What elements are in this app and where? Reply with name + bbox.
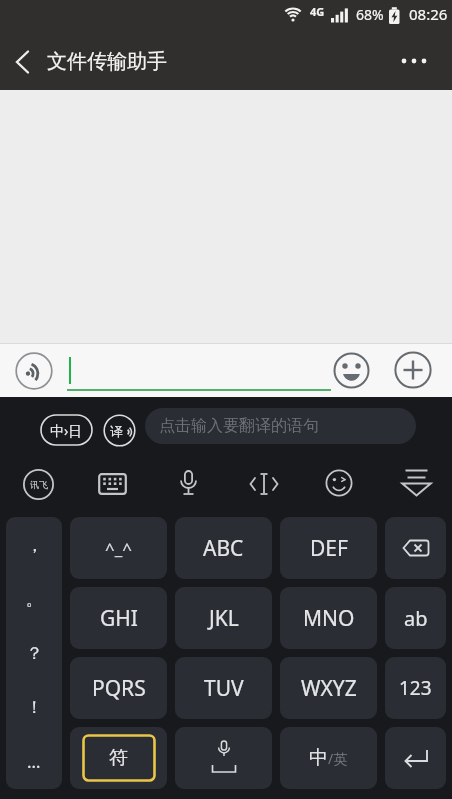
button[interactable]	[401, 468, 432, 498]
button[interactable]: JKL	[175, 587, 272, 649]
button[interactable]: TUV	[175, 657, 272, 719]
button[interactable]	[14, 50, 32, 74]
button[interactable]	[177, 470, 200, 498]
button[interactable]: ab	[385, 587, 446, 649]
staticText: JKL	[209, 604, 239, 633]
button[interactable]: 符	[70, 727, 167, 789]
button[interactable]	[325, 469, 353, 497]
button[interactable]: WXYZ	[280, 657, 377, 719]
button[interactable]	[398, 52, 432, 70]
staticText: ，	[26, 535, 43, 556]
staticText: 符	[109, 746, 128, 770]
staticText: GHI	[100, 604, 138, 633]
button[interactable]	[394, 351, 432, 389]
staticText: ！	[26, 697, 43, 718]
button[interactable]	[175, 727, 272, 789]
button[interactable]: ABC	[175, 517, 272, 579]
button[interactable]	[385, 727, 446, 789]
button[interactable]	[103, 414, 136, 447]
button[interactable]: 中›日	[40, 414, 93, 446]
button[interactable]	[22, 468, 55, 501]
button[interactable]: 点击输入要翻译的语句	[145, 408, 416, 444]
staticText: 讯飞	[30, 479, 48, 490]
staticText: ABC	[203, 534, 244, 563]
button[interactable]	[6, 517, 62, 789]
staticText: 08:26	[409, 4, 448, 24]
staticText: 。	[26, 589, 43, 610]
button[interactable]: PQRS	[70, 657, 167, 719]
staticText: TUV	[204, 674, 244, 703]
staticText: 123	[399, 675, 432, 701]
staticText: 中›日	[50, 421, 83, 440]
button[interactable]: 123	[385, 657, 446, 719]
button[interactable]: 中/英	[280, 727, 377, 789]
staticText: 中/英	[309, 746, 348, 770]
staticText: PQRS	[92, 674, 146, 703]
button[interactable]	[15, 352, 53, 390]
staticText: 4G	[310, 4, 325, 19]
button[interactable]: ^_^	[70, 517, 167, 579]
staticText: 点击输入要翻译的语句	[159, 416, 319, 436]
button[interactable]	[333, 352, 370, 389]
staticText: …	[27, 750, 41, 773]
staticText: ^_^	[105, 537, 132, 560]
button[interactable]	[98, 473, 127, 495]
button[interactable]	[69, 356, 331, 392]
button[interactable]: DEF	[280, 517, 377, 579]
button[interactable]: MNO	[280, 587, 377, 649]
staticText: WXYZ	[301, 674, 357, 703]
button[interactable]	[385, 517, 446, 579]
staticText: ？	[26, 643, 43, 664]
button[interactable]	[249, 472, 279, 496]
staticText: 68%	[356, 5, 384, 24]
staticText: ab	[404, 605, 428, 632]
staticText: MNO	[303, 604, 355, 633]
staticText: DEF	[310, 534, 348, 563]
button[interactable]: GHI	[70, 587, 167, 649]
staticText: 文件传输助手	[47, 49, 167, 74]
staticText: 译	[110, 423, 123, 439]
